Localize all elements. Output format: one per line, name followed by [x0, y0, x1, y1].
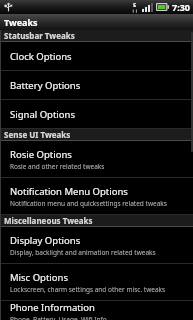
staticText: Notification Menu Options	[10, 185, 128, 198]
staticText: 7:30	[172, 1, 190, 13]
button[interactable]: Display Options	[0, 227, 193, 263]
button[interactable]: Signal Options	[0, 100, 193, 128]
button[interactable]: Battery Options	[0, 71, 193, 99]
staticText: E	[133, 1, 137, 9]
staticText: Miscellaneous Tweaks	[4, 215, 93, 226]
button[interactable]: Misc Options	[0, 264, 193, 300]
staticText: Phone, Battery, Usage, Wifi Info	[10, 315, 107, 320]
button[interactable]: Phone Information	[0, 301, 193, 320]
button[interactable]: Clock Options	[0, 42, 193, 70]
staticText: Tweaks	[4, 16, 38, 28]
staticText: Rosie Options	[10, 148, 72, 161]
staticText: Clock Options	[10, 50, 72, 63]
staticText: Misc Options	[10, 271, 68, 284]
staticText: Sense UI Tweaks	[4, 129, 71, 140]
staticText: Statusbar Tweaks	[4, 30, 75, 41]
staticText: Signal Options	[10, 108, 75, 121]
staticText: Rosie and other related tweaks	[10, 162, 105, 171]
staticText: Phone Information	[10, 301, 95, 314]
staticText: Battery Options	[10, 79, 81, 92]
button[interactable]: Rosie Options	[0, 141, 193, 177]
button[interactable]: Notification Menu Options	[0, 178, 193, 214]
staticText: Display Options	[10, 234, 81, 247]
staticText: Display, backlight and animation related…	[10, 248, 156, 257]
staticText: Notification menu and quicksettings rela…	[10, 199, 167, 208]
staticText: Lockscreen, charm settings and other mis…	[10, 285, 166, 294]
